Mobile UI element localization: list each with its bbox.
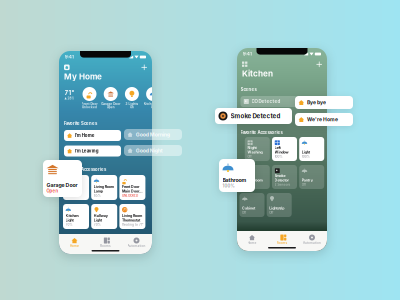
staticText: 28%	[67, 96, 74, 100]
staticText: Light	[302, 150, 310, 154]
staticText: 65%	[94, 194, 101, 197]
staticText: Bathroom	[222, 177, 246, 183]
staticText: Garage Door	[101, 102, 120, 106]
button[interactable]: Living Room Lamp	[91, 175, 117, 200]
staticText: Favorite Accessories	[240, 130, 282, 135]
staticText: 71°	[64, 89, 74, 96]
button[interactable]: We're Home	[295, 113, 353, 126]
staticText: 9:41	[243, 51, 252, 56]
staticText: Kitchen Light	[66, 214, 79, 222]
staticText: Off	[269, 211, 273, 214]
button[interactable]: Good Night	[124, 145, 182, 156]
button[interactable]: Add accessory	[316, 61, 322, 67]
button[interactable]: Lightstrip	[267, 193, 292, 217]
staticText: Cabinet	[242, 206, 255, 210]
staticText: Left Window	[275, 146, 289, 154]
staticText: Lightstrip	[269, 206, 284, 210]
staticText: Hallway Light	[94, 214, 108, 222]
staticText: Pantry	[302, 178, 313, 182]
staticText: 100%	[222, 183, 234, 188]
staticText: 9:41	[65, 54, 74, 59]
staticText: Garage Door	[46, 182, 77, 188]
button[interactable]: Bathroom	[219, 159, 255, 192]
staticText: 70%	[66, 223, 73, 226]
button[interactable]: Automation	[297, 234, 327, 245]
staticText: CO Detected	[252, 99, 281, 104]
staticText: Scenes	[240, 87, 256, 92]
staticText: 2 Sensors	[275, 183, 291, 186]
button[interactable]: Home selector	[64, 64, 70, 70]
button[interactable]: CO Detected	[240, 96, 297, 107]
staticText: Kitchen Light	[144, 102, 163, 106]
button[interactable]: 71	[119, 204, 145, 229]
button[interactable]: Rooms	[90, 237, 121, 248]
staticText: Home	[70, 244, 79, 248]
staticText: Night Washing	[247, 146, 262, 154]
staticText: I'm Home	[75, 133, 95, 138]
staticText: Living Room Thermostat	[122, 214, 142, 222]
staticText: Automation	[303, 241, 321, 245]
staticText: Automation	[127, 244, 145, 248]
button[interactable]: I'm Leaving	[64, 145, 121, 156]
staticText: Bye bye	[307, 99, 326, 105]
staticText: Good Night	[136, 147, 163, 154]
staticText: 71	[123, 208, 126, 211]
staticText: Smoke Detector	[275, 174, 289, 182]
button[interactable]: Garage Door	[43, 160, 82, 197]
button[interactable]: Hallway Light	[91, 204, 117, 229]
button[interactable]: I'm Home	[64, 130, 121, 141]
staticText: Smoke Detected	[230, 112, 280, 120]
button[interactable]: Light	[299, 137, 324, 161]
staticText: Favorite Scenes	[64, 121, 97, 126]
staticText: Kitchen	[242, 68, 273, 78]
staticText: Rooms	[276, 241, 287, 245]
button[interactable]: Rooms menu	[242, 61, 247, 67]
staticText: 100%	[302, 155, 310, 158]
staticText: Open	[46, 188, 58, 193]
button[interactable]: Good Morning	[124, 129, 182, 140]
button[interactable]: Kitchen Light	[63, 204, 89, 229]
staticText: We're Home	[307, 116, 338, 122]
staticText: 3 Lights	[125, 102, 138, 106]
button[interactable]: Front Door Main Door…	[119, 175, 145, 200]
button[interactable]: Night Washing	[245, 137, 270, 161]
staticText: Front Door Main Door…	[122, 185, 143, 193]
staticText: Favorite Accessories	[64, 167, 106, 172]
staticText: Rooms	[100, 244, 111, 248]
staticText: I'm Leaving	[75, 148, 99, 154]
button[interactable]: Add accessory	[141, 64, 147, 70]
button[interactable]: Smoke Detected	[215, 108, 292, 124]
staticText: On	[130, 105, 134, 109]
button[interactable]: Bye bye	[295, 96, 353, 109]
staticText: UNLOCKED	[122, 194, 138, 197]
staticText: 70%	[94, 223, 101, 226]
staticText: Good Morning	[136, 131, 170, 138]
staticText: Home	[247, 241, 256, 245]
button[interactable]: Smoke Detector	[272, 165, 297, 189]
button[interactable]: Home	[59, 237, 90, 248]
button[interactable]: Left Window	[272, 137, 297, 161]
staticText: Heating to 71°	[122, 223, 143, 226]
button[interactable]: Bathroom	[245, 165, 270, 189]
button[interactable]: Rooms	[267, 234, 297, 245]
button[interactable]: Cabinet	[239, 193, 264, 217]
staticText: Unlocked	[82, 105, 97, 109]
staticText: Open	[107, 105, 115, 109]
staticText: On	[151, 105, 155, 109]
staticText: Kitchen Light	[66, 185, 79, 193]
staticText: Off	[247, 155, 251, 158]
button[interactable]: Kitchen Light	[63, 175, 89, 200]
staticText: Living Room Lamp	[94, 185, 114, 193]
staticText: Off	[242, 211, 246, 214]
button[interactable]: Automation	[121, 237, 152, 248]
button[interactable]: Home	[237, 234, 267, 245]
staticText: Off	[302, 183, 306, 186]
staticText: Front Door	[81, 102, 97, 106]
staticText: My Home	[64, 71, 102, 81]
button[interactable]: Pantry	[299, 165, 324, 189]
staticText: 100%	[275, 155, 283, 158]
staticText: Bathroom	[247, 178, 262, 182]
